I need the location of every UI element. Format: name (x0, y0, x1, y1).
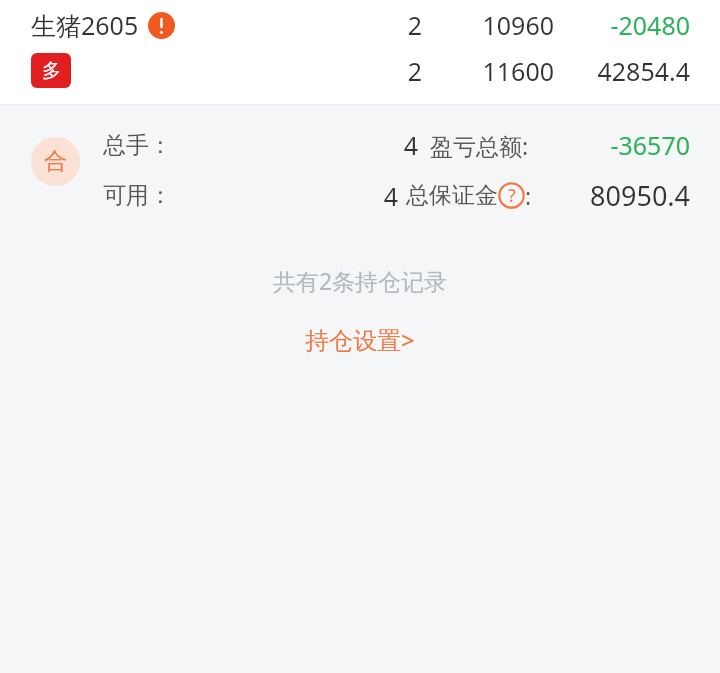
button[interactable]: 生猪2605 (0, 0, 720, 104)
staticText: 多 (42, 59, 61, 83)
button[interactable]: 持仓设置> (289, 319, 431, 360)
staticText: 生猪2605 (31, 8, 139, 42)
staticText: : (525, 180, 532, 211)
staticText: -20480 (580, 8, 690, 42)
staticText: 4 (338, 179, 398, 213)
staticText: 11600 (458, 54, 554, 88)
staticText: 2 (364, 8, 422, 42)
staticText: 持仓设置> (305, 323, 415, 356)
staticText: 10960 (458, 8, 554, 42)
staticText: 合 (44, 147, 67, 176)
staticText: 总手： (103, 131, 172, 160)
staticText: 4 (358, 128, 418, 162)
staticText: 80950.4 (560, 177, 690, 214)
other: Help (498, 182, 525, 209)
staticText: 42854.4 (580, 54, 690, 88)
staticText: 2 (364, 54, 422, 88)
staticText: 可用： (103, 181, 172, 210)
staticText: 共有2条持仓记录 (0, 265, 720, 296)
other: Warning (148, 12, 175, 39)
staticText: 盈亏总额: (430, 130, 529, 161)
staticText: 总保证金 (406, 181, 498, 210)
staticText: ? (508, 183, 516, 208)
staticText: -36570 (580, 128, 690, 162)
